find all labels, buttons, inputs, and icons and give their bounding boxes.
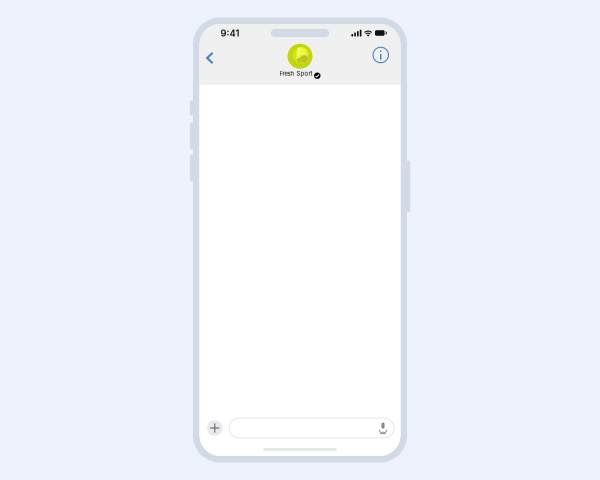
button[interactable]: Conversation info <box>367 40 394 70</box>
staticText: Fresh Sport <box>279 70 312 77</box>
button[interactable]: Add attachment <box>207 420 222 436</box>
button[interactable]: Back <box>200 45 220 71</box>
button[interactable]: Dictate <box>378 421 388 434</box>
staticText: 9:41 <box>220 27 239 39</box>
